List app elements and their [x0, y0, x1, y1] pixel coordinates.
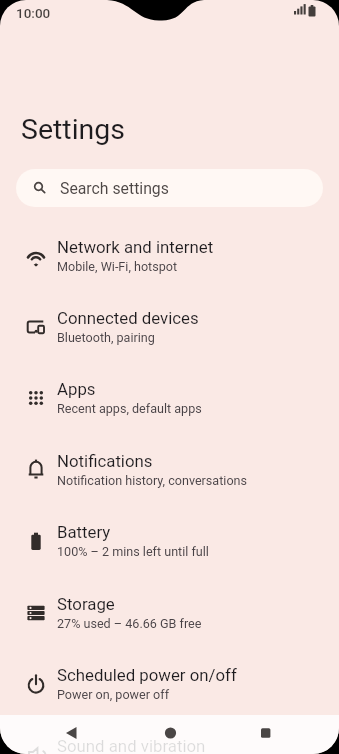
button[interactable]: Search settings — [16, 169, 323, 207]
button[interactable]: Notifications — [0, 434, 339, 505]
staticText: Sound and vibration — [57, 736, 206, 754]
button[interactable] — [235, 715, 295, 754]
staticText: Notifications — [57, 451, 153, 471]
staticText: Recent apps, default apps — [57, 401, 202, 416]
button[interactable]: Battery — [0, 505, 339, 576]
staticText: Storage — [57, 594, 115, 614]
staticText: Mobile, Wi-Fi, hotspot — [57, 259, 178, 274]
staticText: Apps — [57, 379, 96, 399]
staticText: Scheduled power on/off — [57, 665, 237, 685]
button[interactable] — [140, 715, 200, 754]
button[interactable]: Network and internet — [0, 220, 339, 291]
button[interactable]: Sound and vibration — [0, 719, 339, 754]
staticText: Bluetooth, pairing — [57, 330, 155, 345]
button[interactable]: Apps — [0, 362, 339, 433]
button[interactable] — [40, 715, 100, 754]
staticText: 10:00 — [16, 5, 51, 21]
staticText: 27% used – 46.66 GB free — [57, 616, 202, 631]
staticText: Battery — [57, 522, 111, 542]
button[interactable]: Scheduled power on/off — [0, 648, 339, 719]
button[interactable]: Connected devices — [0, 291, 339, 362]
staticText: Network and internet — [57, 237, 214, 257]
staticText: Search settings — [60, 179, 169, 198]
staticText: Notification history, conversations — [57, 473, 248, 488]
staticText: 100% – 2 mins left until full — [57, 544, 209, 559]
staticText: Settings — [21, 113, 126, 146]
staticText: Connected devices — [57, 308, 199, 328]
staticText: Power on, power off — [57, 687, 170, 702]
button[interactable]: Storage — [0, 577, 339, 648]
